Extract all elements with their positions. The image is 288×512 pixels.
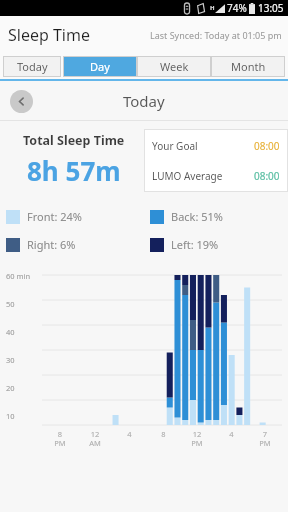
staticText: Left: 19% [171,237,219,252]
staticText: 13:05 [258,1,284,15]
staticText: 74% [227,1,247,15]
button[interactable]: Month [211,56,285,77]
staticText: H [210,4,215,12]
staticText: 08:00 [254,139,280,153]
button[interactable]: Day [63,56,137,77]
staticText: 60 min [6,271,31,281]
staticText: LUMO Average [152,169,223,183]
staticText: 7 PM [259,429,271,448]
staticText: 8 [161,429,166,439]
staticText: Today [123,91,165,111]
staticText: 4 [229,429,234,439]
staticText: 20 [6,383,15,393]
staticText: 50 [6,299,15,309]
staticText: 08:00 [254,169,280,183]
staticText: 4 [127,429,132,439]
staticText: 12 AM [89,429,101,448]
staticText: 30 [6,355,15,365]
staticText: Last Synced: Today at 01:05 pm [150,29,282,41]
staticText: Right: 6% [27,237,76,252]
button[interactable]: Week [137,56,211,77]
button[interactable]: Previous day [10,90,33,113]
staticText: Sleep Time [8,24,90,46]
staticText: Front: 24% [27,209,82,224]
staticText: Back: 51% [171,209,224,224]
staticText: 8 PM [54,429,66,448]
staticText: Month [231,59,266,74]
staticText: Day [90,59,110,74]
staticText: Your Goal [152,139,198,153]
staticText: Total Sleep Time [23,132,125,149]
staticText: 10 [6,411,15,421]
button[interactable]: Today [3,56,61,77]
staticText: 40 [6,327,15,337]
staticText: Today [17,59,48,74]
staticText: 12 PM [191,429,203,448]
staticText: 8h 57m [27,153,121,188]
staticText: Week [160,59,189,74]
